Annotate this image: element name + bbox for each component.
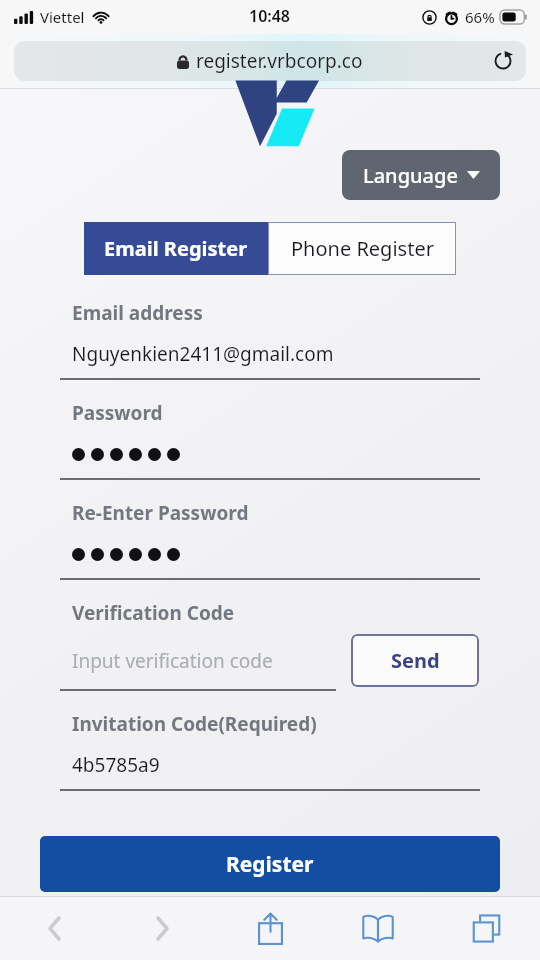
staticText: Viettel (40, 7, 85, 27)
staticText: 4b5785a9 (72, 752, 160, 778)
staticText: Send (391, 647, 440, 674)
button[interactable]: Reload (485, 43, 521, 79)
button[interactable]: Register (40, 836, 500, 892)
button[interactable]: Phone Register (268, 222, 456, 275)
button[interactable]: Email Register (84, 222, 268, 275)
button[interactable]: Language (342, 150, 500, 200)
button[interactable]: Share (216, 897, 324, 960)
button[interactable]: Bookmarks (324, 897, 432, 960)
button[interactable]: Tabs (432, 897, 540, 960)
button[interactable]: Back (0, 897, 108, 960)
staticText: Invitation Code(Required) (72, 711, 317, 737)
staticText: register.vrbcorp.co (196, 48, 363, 74)
staticText: Password (72, 400, 163, 426)
button[interactable]: Send (351, 634, 479, 687)
staticText: Re-Enter Password (72, 500, 249, 526)
staticText: 66% (465, 7, 495, 27)
staticText: Input verification code (72, 648, 273, 674)
staticText: Email address (72, 300, 203, 326)
staticText: Nguyenkien2411@gmail.com (72, 341, 334, 367)
staticText: Verification Code (72, 600, 235, 626)
staticText: Register (226, 850, 314, 879)
staticText: 10:48 (249, 5, 291, 27)
staticText: Phone Register (291, 235, 434, 262)
staticText: Language (363, 162, 458, 189)
staticText: Email Register (104, 235, 248, 262)
button[interactable]: register.vrbcorp.co (14, 41, 526, 81)
button[interactable]: Forward (108, 897, 216, 960)
